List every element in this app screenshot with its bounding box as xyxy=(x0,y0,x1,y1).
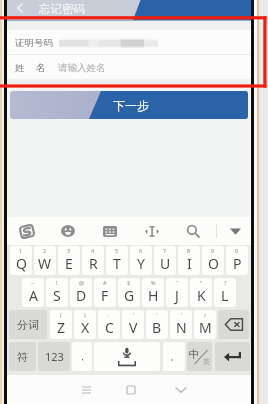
button[interactable]: / xyxy=(194,310,216,339)
staticText: " xyxy=(200,279,203,286)
staticText: ? xyxy=(224,279,227,286)
staticText: 符 xyxy=(17,350,28,364)
staticText: % xyxy=(151,279,156,286)
staticText: E xyxy=(65,254,73,273)
button[interactable]: 9 xyxy=(202,246,224,275)
staticText: 0 xyxy=(235,247,239,254)
button[interactable]: 分词 xyxy=(9,310,47,339)
staticText: 9 xyxy=(211,247,215,254)
staticText: Y xyxy=(137,254,145,273)
button[interactable]: ˝ xyxy=(166,278,188,307)
staticText: ) xyxy=(84,311,86,318)
staticText: G xyxy=(124,286,135,305)
button[interactable]: ! xyxy=(46,278,68,307)
button[interactable]: 8 xyxy=(178,246,200,275)
staticText: 英 xyxy=(203,357,210,366)
button[interactable]: 1 xyxy=(10,246,32,275)
staticText: 。 xyxy=(170,351,179,362)
button[interactable]: · xyxy=(98,310,120,339)
button[interactable]: 证明号码 xyxy=(7,30,251,54)
button[interactable]: 5 xyxy=(106,246,128,275)
button[interactable]: ( xyxy=(50,310,72,339)
staticText: P xyxy=(233,254,242,273)
staticText: 名 xyxy=(36,62,46,74)
button[interactable]: More options xyxy=(221,217,249,245)
button[interactable]: @ xyxy=(70,278,92,307)
staticText: 3 xyxy=(67,247,71,254)
staticText: 7 xyxy=(163,247,167,254)
staticText: 下一步 xyxy=(113,98,149,113)
staticText: M xyxy=(199,318,212,337)
button[interactable]: Emoji xyxy=(54,217,82,245)
button[interactable]: % xyxy=(142,278,164,307)
staticText: 忘记密码 xyxy=(39,2,85,16)
button[interactable]: 2 xyxy=(34,246,56,275)
button[interactable]: $ xyxy=(118,278,140,307)
button[interactable]: Back xyxy=(9,0,31,15)
button[interactable]: ? xyxy=(214,278,236,307)
button[interactable]: 3 xyxy=(58,246,80,275)
staticText: · xyxy=(108,311,110,318)
button[interactable]: 下一步 xyxy=(10,91,248,119)
button[interactable]: 姓 xyxy=(7,55,251,79)
staticText: C xyxy=(105,318,114,337)
button[interactable]: Sogou input xyxy=(13,217,41,245)
staticText: A xyxy=(29,286,38,305)
staticText: ~ xyxy=(31,279,35,286)
staticText: K xyxy=(197,286,206,305)
button[interactable]: 0 xyxy=(226,246,248,275)
staticText: ( xyxy=(60,311,62,318)
button[interactable]: 7 xyxy=(154,246,176,275)
staticText: R xyxy=(89,254,98,273)
staticText: @ xyxy=(79,279,84,286)
button[interactable]: ) xyxy=(74,310,96,339)
staticText: 证明号码 xyxy=(15,37,53,49)
staticText: ‘ xyxy=(133,311,134,318)
staticText: ˝ xyxy=(176,279,179,286)
button[interactable]: Recent apps xyxy=(67,375,105,404)
button[interactable]: Space xyxy=(94,342,160,371)
button[interactable]: Back xyxy=(162,375,200,404)
staticText: O xyxy=(208,254,219,273)
button[interactable]: Search xyxy=(179,217,207,245)
staticText: H xyxy=(148,286,159,305)
button[interactable]: 。 xyxy=(163,342,185,371)
button[interactable]: ' xyxy=(146,310,168,339)
button[interactable]: " xyxy=(190,278,212,307)
staticText: B xyxy=(152,318,162,337)
staticText: Q xyxy=(16,254,27,273)
staticText: ， xyxy=(78,351,87,362)
button[interactable]: Backspace xyxy=(218,310,249,339)
button[interactable]: ‘ xyxy=(122,310,144,339)
staticText: U xyxy=(160,254,171,273)
staticText: L xyxy=(221,286,229,305)
button[interactable]: 6 xyxy=(130,246,152,275)
staticText: I xyxy=(187,254,192,273)
staticText: S xyxy=(53,286,61,305)
staticText: 分词 xyxy=(17,318,39,332)
button[interactable]: Enter xyxy=(215,342,250,371)
staticText: X xyxy=(81,318,90,337)
button[interactable]: Move cursor xyxy=(138,217,166,245)
staticText: / xyxy=(204,311,207,318)
button[interactable]: # xyxy=(94,278,116,307)
staticText: 8 xyxy=(187,247,191,254)
button[interactable]: Keyboard layout xyxy=(96,217,124,245)
button[interactable]: ’ xyxy=(170,310,192,339)
staticText: $ xyxy=(127,279,131,286)
staticText: J xyxy=(175,286,179,305)
button[interactable]: 123 xyxy=(38,342,70,371)
button[interactable]: Home xyxy=(112,375,150,404)
staticText: 123 xyxy=(45,349,64,364)
staticText: W xyxy=(38,254,52,273)
staticText: 请输入姓名 xyxy=(58,62,106,74)
button[interactable]: Switch Chinese English xyxy=(187,342,212,371)
staticText: 姓 xyxy=(15,62,25,74)
staticText: 6 xyxy=(139,247,143,254)
staticText: 中 xyxy=(189,348,200,361)
button[interactable]: 4 xyxy=(82,246,104,275)
button[interactable]: ~ xyxy=(22,278,44,307)
staticText: F xyxy=(101,286,109,305)
button[interactable]: ， xyxy=(72,342,92,371)
button[interactable]: 符 xyxy=(9,342,36,371)
